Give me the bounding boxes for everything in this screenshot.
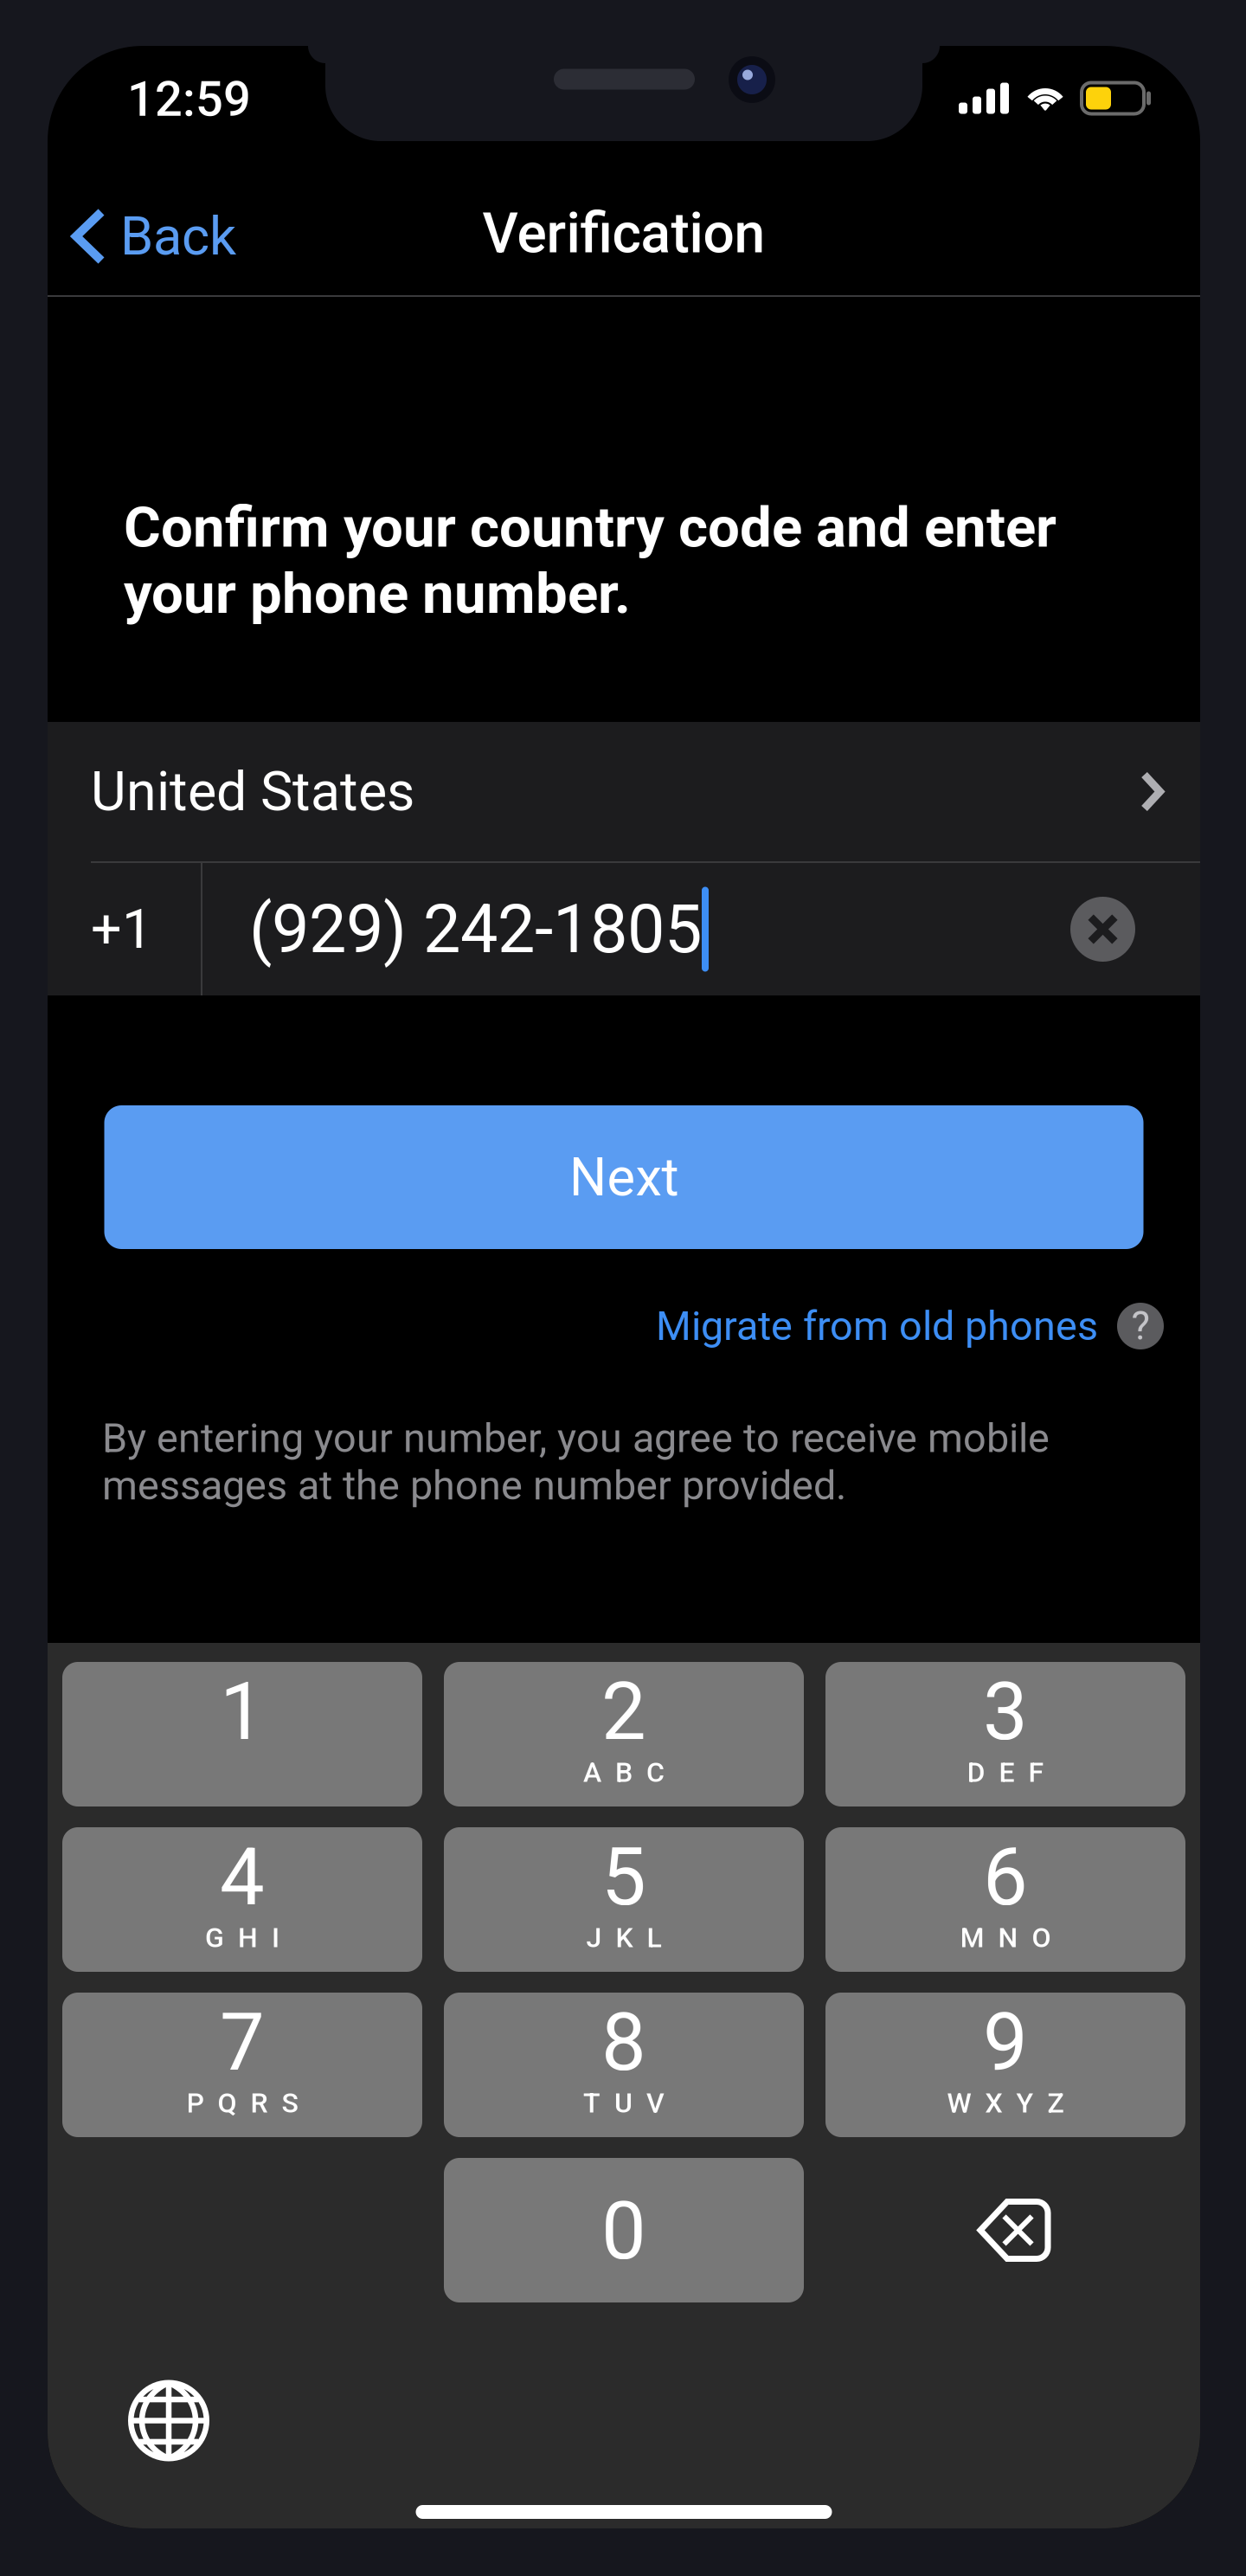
staticText: 6 <box>983 1831 1028 1924</box>
staticText: A B C <box>583 1756 665 1789</box>
staticText: Back <box>120 205 236 267</box>
staticText: Verification <box>482 201 765 266</box>
staticText: 3 <box>983 1665 1028 1759</box>
staticText: 4 <box>220 1831 265 1924</box>
button[interactable]: 6 <box>825 1827 1185 1972</box>
staticText: G H I <box>205 1921 279 1954</box>
button[interactable]: 0 <box>444 2158 804 2302</box>
button[interactable]: Back <box>48 140 257 295</box>
staticText: 5 <box>601 1831 646 1924</box>
staticText: 1 <box>220 1665 265 1759</box>
staticText: J K L <box>586 1921 662 1954</box>
staticText: 9 <box>983 1996 1028 2089</box>
staticText: 8 <box>601 1996 646 2089</box>
button[interactable]: 9 <box>825 1993 1185 2137</box>
button[interactable]: 4 <box>62 1827 422 1972</box>
staticText: P Q R S <box>186 2087 298 2119</box>
button[interactable]: Delete <box>825 2158 1185 2302</box>
button[interactable]: 8 <box>444 1993 804 2137</box>
staticText: D E F <box>967 1756 1044 1789</box>
button[interactable]: 5 <box>444 1827 804 1972</box>
staticText: W X Y Z <box>947 2087 1064 2119</box>
button[interactable]: 1 <box>62 1662 422 1806</box>
button[interactable]: Next <box>104 1105 1143 1249</box>
staticText: (929) 242-1805 <box>249 890 702 968</box>
button[interactable]: Switch keyboard <box>48 2380 209 2461</box>
staticText: 2 <box>601 1665 646 1759</box>
staticText: ? <box>1131 1303 1150 1349</box>
staticText: United States <box>91 760 414 823</box>
staticText: Next <box>569 1146 679 1208</box>
staticText: Migrate from old phones <box>656 1302 1098 1350</box>
staticText: By entering your number, you agree to re… <box>102 1415 1050 1509</box>
button[interactable]: United States <box>48 722 1200 861</box>
staticText: +1 <box>91 897 152 961</box>
staticText: Confirm your country code and enter your… <box>124 494 1057 627</box>
staticText: 0 <box>601 2185 646 2278</box>
button[interactable]: 7 <box>62 1993 422 2137</box>
button[interactable]: 2 <box>444 1662 804 1806</box>
staticText: T U V <box>583 2087 665 2119</box>
button[interactable]: Clear text <box>1070 897 1200 962</box>
staticText: 7 <box>220 1996 265 2089</box>
button[interactable]: Migrate from old phones <box>656 1249 1200 1374</box>
button[interactable]: 3 <box>825 1662 1185 1806</box>
staticText: M N O <box>960 1921 1051 1954</box>
staticText: 12:59 <box>127 71 251 128</box>
